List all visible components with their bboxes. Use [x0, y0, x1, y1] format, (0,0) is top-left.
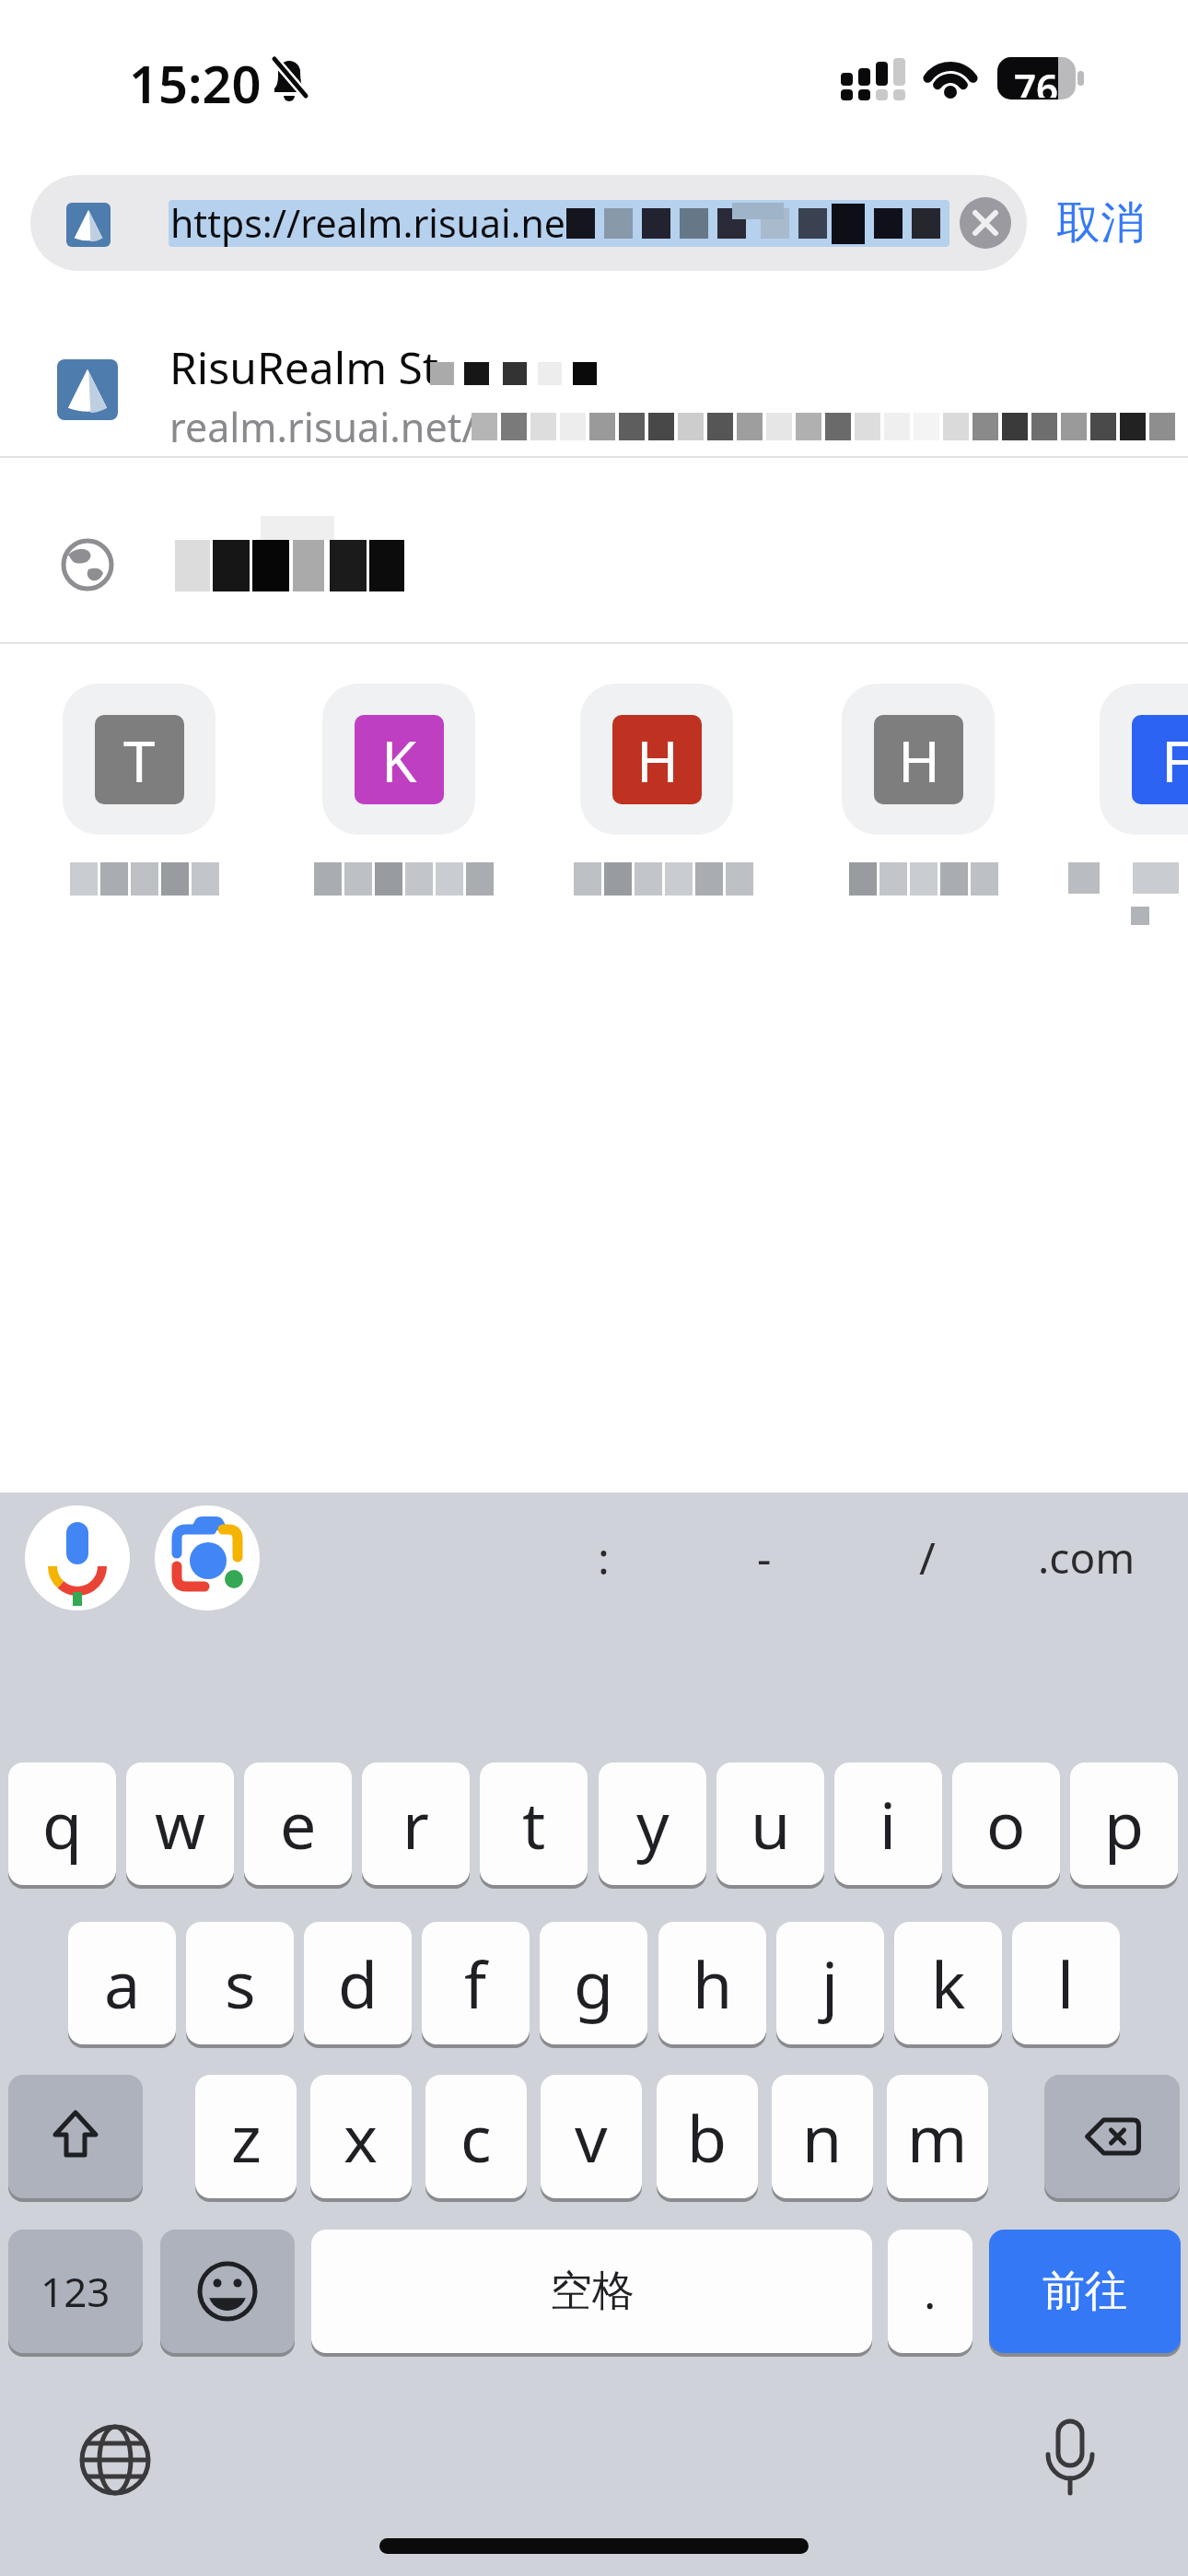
- button[interactable]: [1033, 2419, 1107, 2497]
- button[interactable]: 前往: [989, 2230, 1181, 2353]
- staticText: /: [919, 1528, 936, 1587]
- button[interactable]: i: [834, 1762, 942, 1885]
- staticText: -: [757, 1528, 772, 1587]
- button[interactable]: q: [8, 1762, 116, 1885]
- button[interactable]: e: [244, 1762, 352, 1885]
- button[interactable]: K: [322, 684, 475, 835]
- staticText: H: [636, 721, 679, 799]
- button[interactable]: a: [68, 1922, 176, 2044]
- button[interactable]: y: [599, 1762, 706, 1885]
- button[interactable]: -: [723, 1520, 806, 1594]
- button[interactable]: l: [1012, 1922, 1120, 2044]
- staticText: :: [598, 1528, 610, 1587]
- staticText: 前往: [1042, 2265, 1127, 2318]
- staticText: o: [986, 1780, 1026, 1868]
- staticText: u: [751, 1780, 791, 1868]
- staticText: 123: [41, 2264, 111, 2319]
- button[interactable]: H: [580, 684, 733, 835]
- button[interactable]: [0, 458, 1188, 642]
- button[interactable]: w: [126, 1762, 234, 1885]
- button[interactable]: d: [304, 1922, 412, 2044]
- button[interactable]: 空格: [311, 2230, 872, 2353]
- staticText: F: [1161, 721, 1188, 799]
- button[interactable]: m: [887, 2075, 988, 2198]
- button[interactable]: 123: [8, 2230, 143, 2353]
- staticText: .com: [1038, 1528, 1136, 1587]
- staticText: 取消: [1056, 195, 1145, 251]
- button[interactable]: .com: [1013, 1520, 1160, 1594]
- button[interactable]: t: [480, 1762, 588, 1885]
- staticText: c: [460, 2093, 492, 2181]
- staticText: q: [42, 1780, 83, 1868]
- button[interactable]: F: [1100, 684, 1188, 835]
- button[interactable]: u: [716, 1762, 824, 1885]
- button[interactable]: [8, 2075, 143, 2198]
- staticText: 15:20: [129, 48, 262, 118]
- staticText: k: [931, 1939, 966, 2027]
- staticText: i: [879, 1780, 897, 1868]
- button[interactable]: T: [63, 684, 215, 835]
- button[interactable]: [78, 2423, 152, 2497]
- staticText: n: [802, 2093, 843, 2181]
- button[interactable]: f: [422, 1922, 530, 2044]
- staticText: m: [907, 2093, 968, 2181]
- staticText: realm.risuai.net/: [169, 400, 477, 454]
- button[interactable]: :: [562, 1520, 645, 1594]
- button[interactable]: z: [195, 2075, 297, 2198]
- staticText: .: [924, 2260, 937, 2323]
- button[interactable]: [30, 175, 1027, 271]
- staticText: x: [344, 2093, 379, 2181]
- button[interactable]: 取消: [1045, 193, 1156, 252]
- staticText: t: [522, 1780, 546, 1868]
- button[interactable]: p: [1070, 1762, 1178, 1885]
- button[interactable]: o: [952, 1762, 1060, 1885]
- staticText: v: [575, 2093, 608, 2181]
- button[interactable]: b: [657, 2075, 758, 2198]
- staticText: h: [693, 1939, 733, 2027]
- staticText: https://realm.risuai.ne: [170, 197, 565, 249]
- staticText: j: [821, 1939, 839, 2027]
- button[interactable]: [155, 1505, 260, 1610]
- staticText: r: [402, 1780, 429, 1868]
- button[interactable]: x: [310, 2075, 412, 2198]
- button[interactable]: j: [776, 1922, 884, 2044]
- staticText: y: [636, 1780, 670, 1868]
- button[interactable]: h: [658, 1922, 766, 2044]
- staticText: d: [338, 1939, 379, 2027]
- button[interactable]: r: [362, 1762, 470, 1885]
- button[interactable]: s: [186, 1922, 294, 2044]
- staticText: l: [1057, 1939, 1075, 2027]
- staticText: z: [231, 2093, 262, 2181]
- button[interactable]: [1044, 2075, 1180, 2198]
- button[interactable]: [960, 197, 1011, 249]
- staticText: p: [1104, 1780, 1145, 1868]
- staticText: b: [687, 2093, 728, 2181]
- button[interactable]: /: [886, 1520, 969, 1594]
- button[interactable]: [160, 2230, 295, 2353]
- button[interactable]: n: [772, 2075, 873, 2198]
- button[interactable]: .: [888, 2230, 973, 2353]
- staticText: H: [898, 721, 940, 799]
- staticText: T: [123, 721, 156, 799]
- staticText: 空格: [550, 2265, 635, 2318]
- button[interactable]: v: [541, 2075, 642, 2198]
- staticText: e: [280, 1780, 317, 1868]
- button[interactable]: H: [842, 684, 995, 835]
- button[interactable]: c: [425, 2075, 527, 2198]
- button[interactable]: [0, 313, 1188, 456]
- staticText: w: [155, 1780, 206, 1868]
- staticText: RisuRealm St: [169, 337, 439, 397]
- staticText: a: [104, 1939, 141, 2027]
- button[interactable]: k: [894, 1922, 1002, 2044]
- button[interactable]: [25, 1505, 130, 1610]
- staticText: f: [464, 1939, 487, 2027]
- staticText: K: [381, 721, 417, 799]
- staticText: s: [225, 1939, 256, 2027]
- staticText: g: [574, 1939, 614, 2027]
- staticText: 76: [1014, 61, 1059, 98]
- button[interactable]: g: [540, 1922, 647, 2044]
